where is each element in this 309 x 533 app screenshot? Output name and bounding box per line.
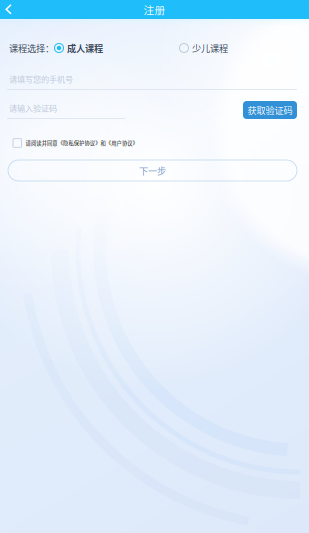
button[interactable]: Back — [0, 0, 25, 19]
staticText: 注册 — [143, 2, 165, 17]
button[interactable]: 成人课程 — [54, 41, 103, 55]
button[interactable]: 获取验证码 — [243, 101, 297, 119]
staticText: 请输入验证码 — [9, 102, 57, 114]
button[interactable]: 下一步 — [8, 160, 297, 181]
staticText: 请阅读并同意《隐私保护协议》和《用户协议》 — [26, 139, 138, 147]
staticText: 下一步 — [139, 164, 166, 177]
staticText: 课程选择： — [9, 41, 54, 55]
staticText: 请填写您的手机号 — [9, 73, 73, 85]
button[interactable]: 请阅读并同意《隐私保护协议》和《用户协议》 — [0, 137, 309, 149]
staticText: 获取验证码 — [247, 103, 292, 117]
button[interactable]: 少儿课程 — [179, 41, 309, 55]
staticText: 成人课程 — [67, 41, 103, 55]
staticText: 少儿课程 — [192, 41, 228, 55]
